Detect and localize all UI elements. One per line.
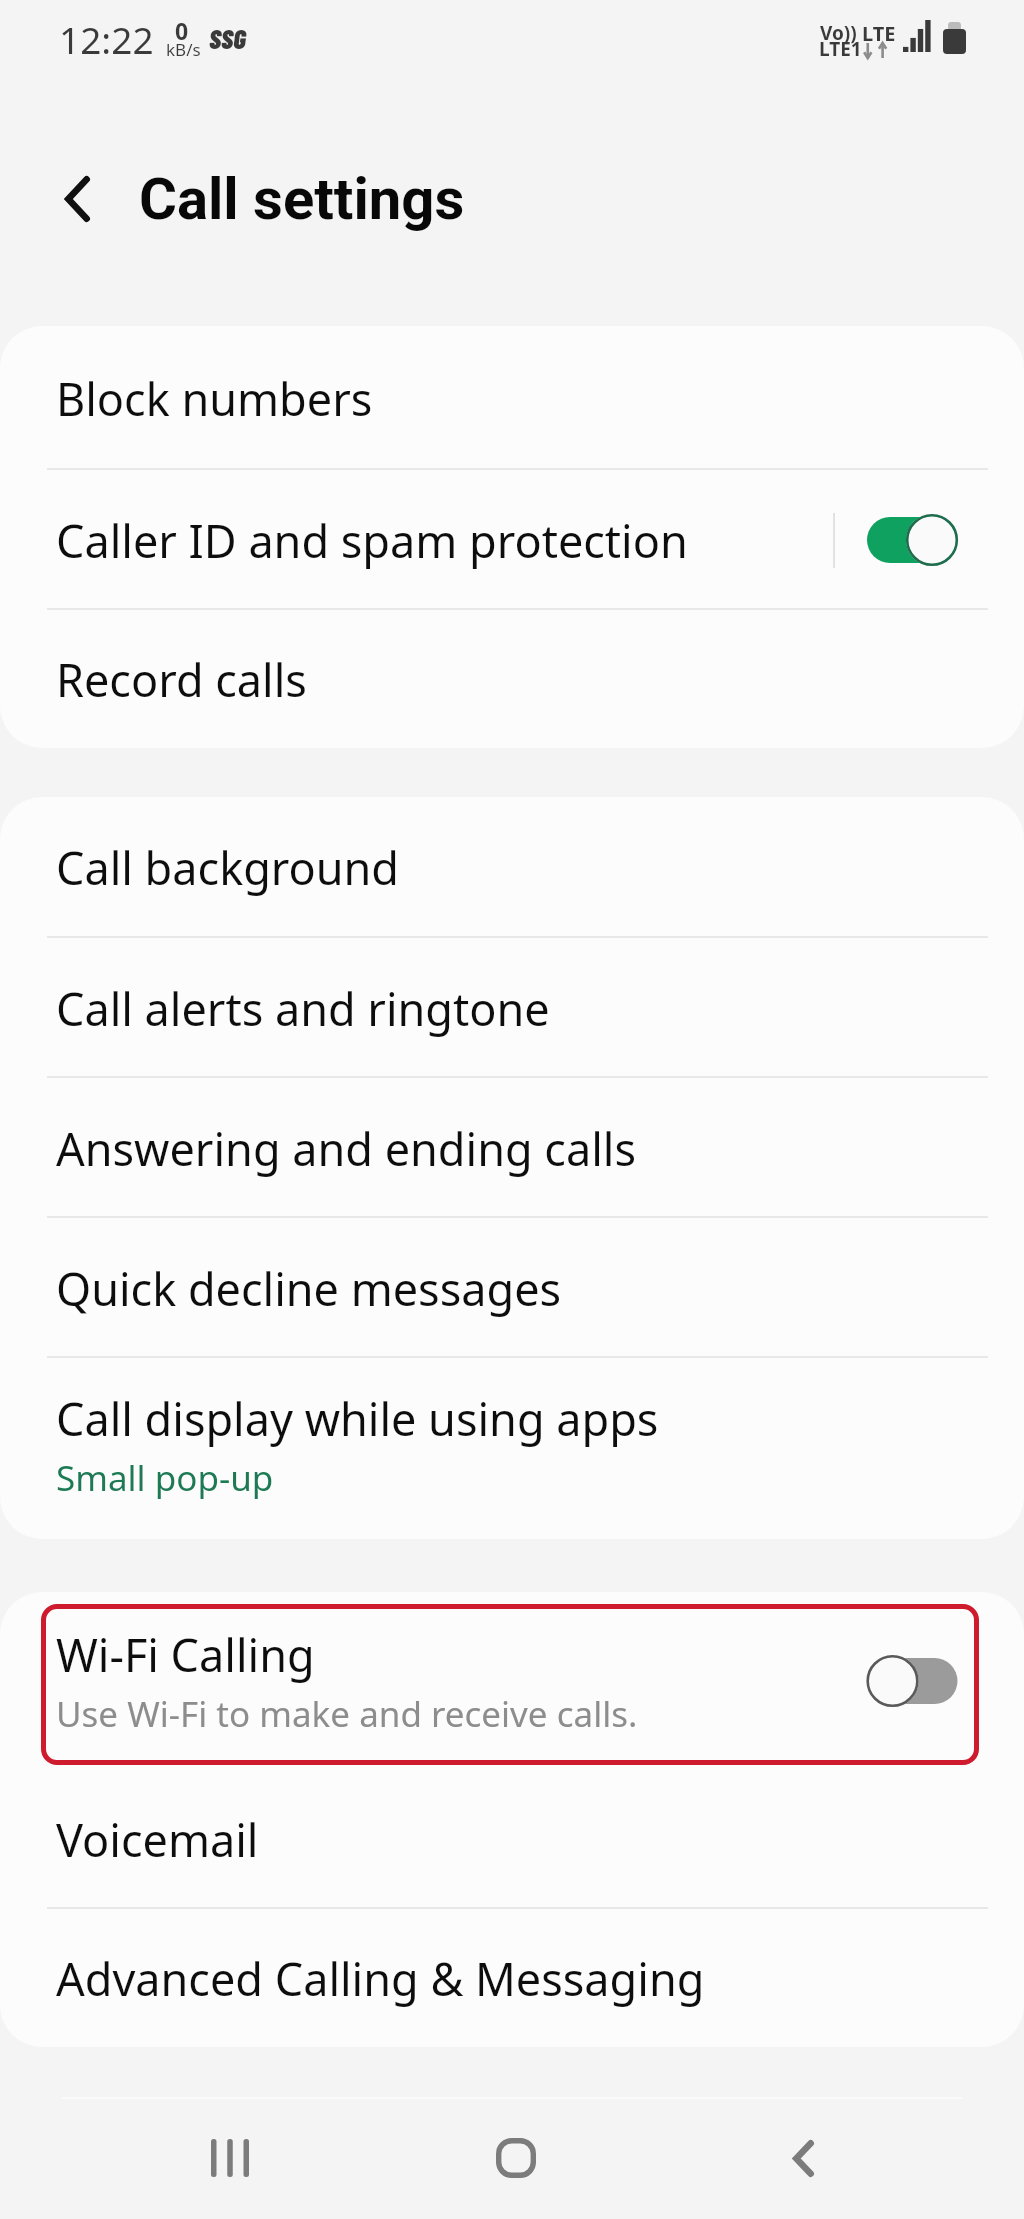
button[interactable]: Quick decline messages	[0, 1218, 1024, 1358]
button[interactable]: Voicemail	[0, 1770, 1024, 1909]
button[interactable]: Call display while using apps	[0, 1358, 1024, 1539]
staticText: LTE	[862, 20, 896, 47]
staticText: Small pop-up	[56, 1454, 274, 1502]
button[interactable]: Caller ID and spam protection	[0, 470, 1024, 610]
button[interactable]: Answering and ending calls	[0, 1078, 1024, 1218]
staticText: Quick decline messages	[56, 1258, 562, 1319]
button[interactable]: Advanced Calling & Messaging	[0, 1909, 1024, 2047]
button[interactable]: Recent apps	[170, 2097, 290, 2219]
button[interactable]: Home	[456, 2097, 576, 2219]
staticText: Use Wi-Fi to make and receive calls.	[56, 1690, 638, 1738]
staticText: 0	[175, 15, 189, 46]
staticText: Call background	[56, 837, 400, 898]
staticText: Voicemail	[56, 1809, 259, 1870]
button[interactable]: Call alerts and ringtone	[0, 938, 1024, 1078]
staticText: kB/s	[166, 38, 201, 61]
staticText: LTE1	[819, 36, 862, 62]
button[interactable]: Wi-Fi Calling	[0, 1592, 1024, 1770]
button[interactable]: Record calls	[0, 610, 1024, 748]
staticText: Record calls	[56, 649, 307, 710]
button[interactable]: Switch on	[853, 505, 965, 575]
button[interactable]: Block numbers	[0, 326, 1024, 470]
staticText: Call settings	[139, 165, 465, 233]
staticText: Vo))	[820, 20, 857, 46]
staticText: 12:22	[59, 14, 154, 64]
staticText: Call display while using apps	[56, 1388, 659, 1449]
button[interactable]: Back	[743, 2097, 863, 2219]
staticText: Call alerts and ringtone	[56, 978, 550, 1039]
button[interactable]: Navigate up	[22, 144, 133, 254]
staticText: SSG	[209, 22, 246, 54]
staticText: Advanced Calling & Messaging	[56, 1948, 705, 2009]
staticText: Block numbers	[56, 368, 373, 429]
staticText: Answering and ending calls	[56, 1118, 636, 1179]
staticText: Wi-Fi Calling	[56, 1624, 315, 1685]
button[interactable]: Call background	[0, 797, 1024, 938]
button[interactable]: Switch off	[853, 1646, 965, 1716]
staticText: Caller ID and spam protection	[56, 510, 688, 571]
